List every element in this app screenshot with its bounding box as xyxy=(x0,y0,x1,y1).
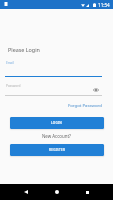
button[interactable]: LOGIN xyxy=(10,117,104,129)
button[interactable]: Forgot Password xyxy=(68,102,102,108)
button[interactable]: New Account? xyxy=(42,133,71,139)
staticText: Email xyxy=(6,61,14,65)
staticText: Please Login xyxy=(8,46,40,53)
button[interactable]: Password xyxy=(5,80,102,96)
button[interactable]: Show password xyxy=(90,84,101,95)
staticText: LOGIN xyxy=(51,121,63,125)
staticText: 11:54 xyxy=(98,2,110,8)
button[interactable]: REGISTER xyxy=(10,144,104,156)
button[interactable]: Back xyxy=(11,184,41,200)
button[interactable]: Recents xyxy=(72,184,103,200)
button[interactable]: Email xyxy=(5,58,102,77)
staticText: REGISTER xyxy=(49,148,66,152)
staticText: Password xyxy=(6,84,21,88)
button[interactable]: Home xyxy=(41,184,72,200)
